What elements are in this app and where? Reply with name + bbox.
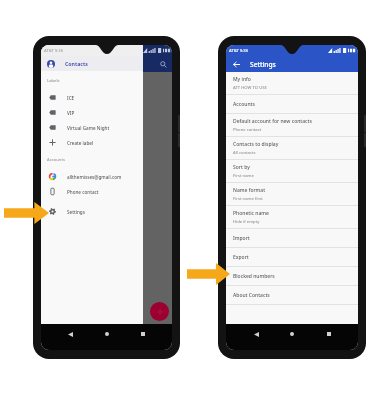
- button[interactable]: Create label: [41, 135, 143, 150]
- staticText: Name format: [233, 187, 266, 194]
- staticText: Sort by: [233, 164, 250, 171]
- staticText: Labels: [47, 78, 60, 84]
- staticText: All contacts: [233, 150, 256, 156]
- staticText: My info: [233, 76, 251, 83]
- staticText: Settings: [67, 209, 85, 215]
- button[interactable]: Navigate up: [232, 60, 241, 69]
- staticText: Default account for new contacts: [233, 118, 312, 125]
- staticText: About Contacts: [233, 292, 270, 299]
- staticText: Virtual Game Night: [67, 125, 110, 131]
- staticText: Blocked numbers: [233, 273, 275, 280]
- staticText: Export: [233, 254, 249, 261]
- button[interactable]: Virtual Game Night: [41, 120, 143, 135]
- button[interactable]: VIP: [41, 105, 143, 120]
- staticText: First name first: [233, 196, 263, 202]
- button[interactable]: Recent apps: [136, 327, 150, 341]
- staticText: ATT HOW TO USE: [233, 85, 267, 91]
- button[interactable]: About Contacts: [226, 286, 358, 305]
- staticText: VIP: [67, 110, 75, 116]
- staticText: AT&T 9:36: [44, 48, 64, 54]
- button[interactable]: Export: [226, 248, 358, 267]
- staticText: ICE: [67, 95, 75, 101]
- button[interactable]: Phonetic name: [226, 206, 358, 229]
- staticText: Create label: [67, 140, 94, 146]
- staticText: Import: [233, 235, 250, 242]
- staticText: Phone contact: [233, 127, 262, 133]
- button[interactable]: Contacts: [41, 56, 143, 71]
- button[interactable]: Name format: [226, 183, 358, 206]
- staticText: Accounts: [233, 101, 255, 108]
- button[interactable]: Contacts to display: [226, 137, 358, 160]
- button[interactable]: Create contact: [150, 302, 169, 321]
- staticText: Contacts: [65, 60, 88, 67]
- button[interactable]: ICE: [41, 90, 143, 105]
- button[interactable]: allthemisses@gmail.com: [41, 169, 143, 184]
- staticText: Accounts: [47, 157, 65, 163]
- button[interactable]: My info: [226, 72, 358, 95]
- button[interactable]: Back: [249, 327, 263, 341]
- staticText: Settings: [250, 60, 276, 69]
- button[interactable]: Home: [285, 327, 299, 341]
- staticText: Contacts to display: [233, 141, 279, 148]
- button[interactable]: Recent apps: [322, 327, 336, 341]
- staticText: allthemisses@gmail.com: [67, 174, 122, 180]
- staticText: Phonetic name: [233, 210, 269, 217]
- button[interactable]: Search: [159, 60, 167, 68]
- button[interactable]: Default account for new contacts: [226, 114, 358, 137]
- button[interactable]: Home: [100, 327, 114, 341]
- staticText: First name: [233, 173, 254, 179]
- button[interactable]: Sort by: [226, 160, 358, 183]
- button[interactable]: Blocked numbers: [226, 267, 358, 286]
- button[interactable]: Import: [226, 229, 358, 248]
- button[interactable]: Settings: [41, 204, 143, 219]
- staticText: AT&T 9:36: [229, 48, 249, 54]
- staticText: Phone contact: [67, 189, 99, 195]
- staticText: Hide if empty: [233, 219, 260, 225]
- button[interactable]: Back: [63, 327, 77, 341]
- button[interactable]: Navigate up: [226, 56, 358, 72]
- button[interactable]: Phone contact: [41, 184, 143, 199]
- button[interactable]: Accounts: [226, 95, 358, 114]
